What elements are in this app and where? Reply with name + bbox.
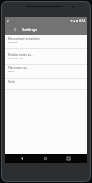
button[interactable]: Recent apps [62, 154, 74, 163]
staticText: C D E F G A B [8, 56, 23, 59]
staticText: Settings [22, 27, 38, 32]
staticText: Piano [8, 69, 15, 72]
staticText: Display notes as... [8, 53, 34, 56]
button[interactable]: Back [16, 154, 28, 163]
button[interactable]: Display notes as... [5, 49, 87, 65]
button[interactable]: Home [39, 154, 51, 163]
button[interactable]: Play notes as... [5, 65, 87, 79]
staticText: Help [8, 80, 15, 83]
staticText: Medium [8, 40, 18, 43]
button[interactable]: Help [5, 79, 87, 90]
staticText: Play notes as... [8, 66, 29, 69]
button[interactable]: Navigate back [10, 24, 19, 35]
staticText: 4:14 [79, 19, 86, 23]
button[interactable]: Microphone sensitivity [5, 35, 87, 49]
staticText: Microphone sensitivity [8, 37, 40, 40]
